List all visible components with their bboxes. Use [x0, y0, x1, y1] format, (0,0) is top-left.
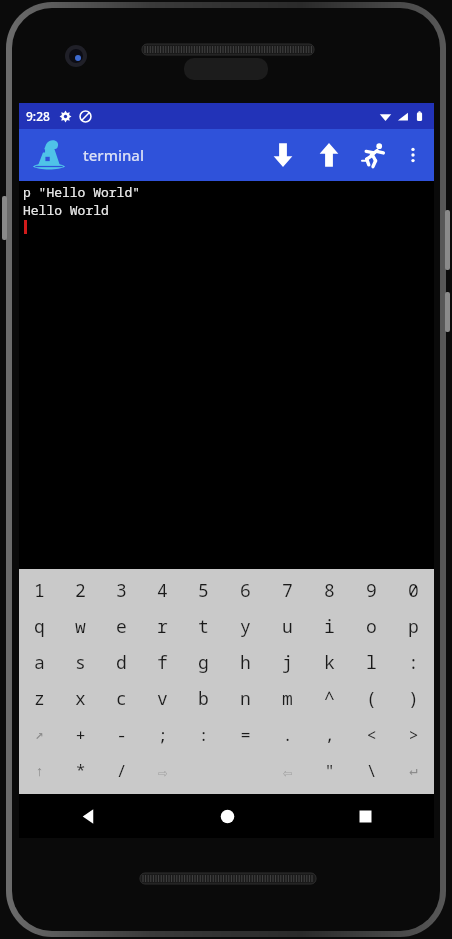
staticText: ↗ — [35, 726, 44, 742]
staticText: l — [366, 650, 377, 675]
staticText: Hello World — [23, 201, 109, 219]
staticText: v — [157, 686, 168, 711]
staticText: p — [408, 614, 419, 639]
staticText: : — [408, 650, 419, 675]
button[interactable]: App icon — [29, 135, 69, 175]
button[interactable]: h — [224, 644, 266, 680]
button[interactable]: < — [350, 716, 392, 752]
button[interactable]: More options — [396, 138, 430, 172]
button[interactable]: p "Hello World" — [19, 181, 434, 569]
button[interactable]: r — [142, 608, 183, 644]
button[interactable]: x — [60, 680, 101, 716]
button[interactable]: ( — [350, 680, 392, 716]
button[interactable]: w — [60, 608, 101, 644]
button[interactable]: Home — [158, 794, 296, 838]
button[interactable]: ) — [392, 680, 434, 716]
button[interactable]: u — [266, 608, 308, 644]
button[interactable]: g — [183, 644, 224, 680]
staticText: 7 — [282, 578, 293, 603]
button[interactable]: y — [224, 608, 266, 644]
staticText: y — [240, 614, 251, 639]
button[interactable]: > — [392, 716, 434, 752]
button[interactable]: l — [350, 644, 392, 680]
button[interactable]: Back — [19, 794, 158, 838]
button[interactable]: Recent apps — [296, 794, 434, 838]
staticText: r — [157, 614, 168, 639]
button[interactable]: 8 — [308, 573, 350, 608]
button[interactable]: " — [308, 752, 350, 788]
staticText: g — [198, 650, 209, 675]
button[interactable]: n — [224, 680, 266, 716]
staticText: ⇦ — [279, 761, 296, 780]
button[interactable]: k — [308, 644, 350, 680]
button[interactable]: a — [19, 644, 60, 680]
staticText: ^ — [324, 686, 335, 711]
button[interactable]: = — [224, 716, 266, 752]
staticText: ↵ — [409, 762, 418, 778]
button[interactable]: Scroll up — [306, 132, 352, 178]
button[interactable]: b — [183, 680, 224, 716]
staticText: w — [75, 614, 86, 639]
button[interactable]: + — [60, 716, 101, 752]
button[interactable]: : — [392, 644, 434, 680]
staticText: k — [324, 650, 335, 675]
staticText: o — [366, 614, 377, 639]
button[interactable]: m — [266, 680, 308, 716]
staticText: , — [324, 723, 335, 746]
button[interactable]: ↑ — [19, 752, 60, 788]
staticText: b — [198, 686, 209, 711]
button[interactable]: 0 — [392, 573, 434, 608]
button[interactable]: Run — [352, 133, 396, 177]
staticText: 2 — [75, 578, 86, 603]
staticText: z — [34, 686, 45, 711]
staticText: + — [75, 723, 86, 746]
button[interactable]: 4 — [142, 573, 183, 608]
staticText: x — [75, 686, 86, 711]
button[interactable]: e — [101, 608, 142, 644]
button[interactable]: i — [308, 608, 350, 644]
button[interactable]: c — [101, 680, 142, 716]
button[interactable]: v — [142, 680, 183, 716]
button[interactable]: f — [142, 644, 183, 680]
button[interactable]: 6 — [224, 573, 266, 608]
button[interactable]: s — [60, 644, 101, 680]
staticText: . — [282, 723, 293, 746]
button[interactable]: . — [266, 716, 308, 752]
button[interactable]: d — [101, 644, 142, 680]
staticText: j — [282, 650, 293, 675]
button[interactable]: o — [350, 608, 392, 644]
button[interactable]: Scroll down — [260, 132, 306, 178]
staticText: * — [75, 759, 86, 782]
staticText: d — [116, 650, 127, 675]
button[interactable]: : — [183, 716, 224, 752]
staticText: 4 — [157, 578, 168, 603]
button[interactable]: 7 — [266, 573, 308, 608]
button[interactable]: * — [60, 752, 101, 788]
button[interactable]: 1 — [19, 573, 60, 608]
button[interactable]: 2 — [60, 573, 101, 608]
button[interactable]: t — [183, 608, 224, 644]
staticText: n — [240, 686, 251, 711]
staticText: t — [198, 614, 209, 639]
button[interactable]: 5 — [183, 573, 224, 608]
staticText: a — [34, 650, 45, 675]
button[interactable]: - — [101, 716, 142, 752]
staticText: 1 — [34, 578, 45, 603]
button[interactable]: q — [19, 608, 60, 644]
button[interactable]: , — [308, 716, 350, 752]
button[interactable]: \ — [350, 752, 392, 788]
button[interactable]: z — [19, 680, 60, 716]
button[interactable]: 9 — [350, 573, 392, 608]
button[interactable]: / — [101, 752, 142, 788]
button[interactable]: ; — [142, 716, 183, 752]
button[interactable]: ↗ — [19, 716, 60, 752]
button[interactable]: j — [266, 644, 308, 680]
button[interactable]: p — [392, 608, 434, 644]
button[interactable]: ^ — [308, 680, 350, 716]
button[interactable]: 3 — [101, 573, 142, 608]
button[interactable]: ↵ — [392, 752, 434, 788]
